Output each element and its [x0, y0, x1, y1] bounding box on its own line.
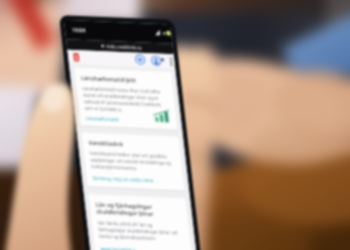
button[interactable]: Phone screen showing Creditinfo page — [0, 0, 350, 250]
